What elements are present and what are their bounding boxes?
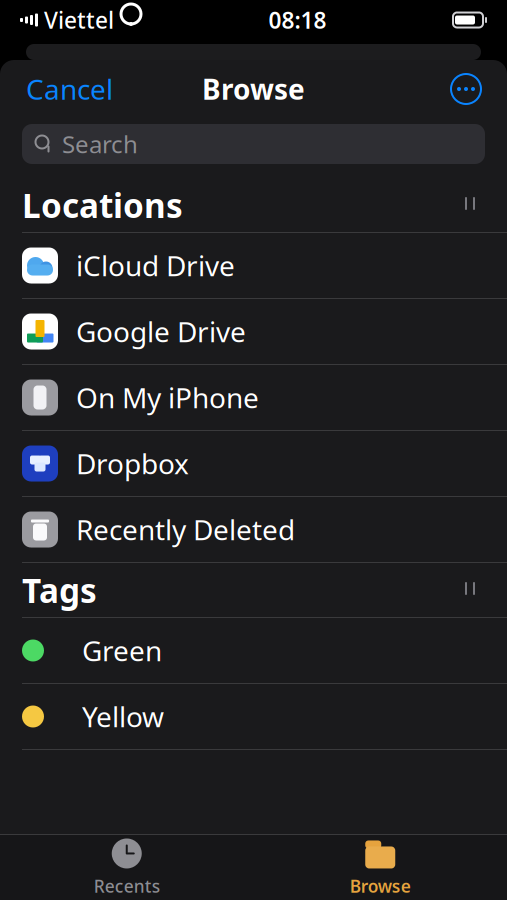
button[interactable]: On My iPhone: [0, 365, 507, 430]
button[interactable]: Recents: [0, 829, 253, 900]
button[interactable]: Tags: [0, 563, 507, 617]
staticText: Green: [82, 632, 162, 669]
button[interactable]: Dropbox: [0, 431, 507, 496]
button[interactable]: Green: [0, 618, 507, 683]
button[interactable]: Recently Deleted: [0, 497, 507, 562]
staticText: On My iPhone: [76, 379, 259, 416]
button[interactable]: Locations: [0, 178, 507, 232]
staticText: Search: [62, 128, 138, 160]
staticText: Locations: [22, 183, 183, 227]
staticText: Browse: [350, 874, 411, 897]
button[interactable]: Search: [22, 124, 485, 164]
staticText: Cancel: [26, 70, 113, 108]
staticText: Recents: [94, 874, 160, 897]
button[interactable]: iCloud Drive: [0, 233, 507, 298]
staticText: 08:18: [268, 5, 326, 35]
staticText: Viettel: [44, 5, 114, 35]
staticText: Yellow: [82, 698, 164, 735]
button[interactable]: Cancel: [22, 64, 117, 114]
button[interactable]: More options: [447, 70, 485, 108]
staticText: Dropbox: [76, 445, 189, 482]
button[interactable]: Yellow: [0, 684, 507, 749]
staticText: Google Drive: [76, 313, 246, 350]
staticText: Tags: [22, 568, 97, 612]
staticText: Browse: [202, 70, 305, 108]
button[interactable]: Google Drive: [0, 299, 507, 364]
staticText: Recently Deleted: [76, 511, 295, 548]
button[interactable]: Browse: [253, 829, 507, 900]
staticText: iCloud Drive: [76, 247, 235, 284]
